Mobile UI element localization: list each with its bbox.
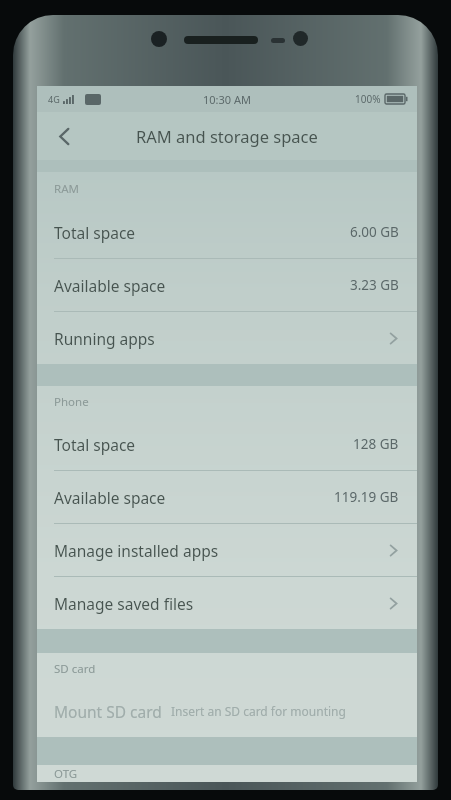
staticText: RAM bbox=[54, 181, 79, 197]
staticText: Manage installed apps bbox=[54, 540, 219, 561]
staticText: Phone bbox=[54, 394, 89, 410]
button[interactable]: Manage saved files bbox=[37, 577, 417, 629]
button[interactable]: Total space bbox=[37, 206, 417, 258]
staticText: Total space bbox=[54, 222, 136, 243]
staticText: 4G bbox=[48, 93, 60, 105]
button[interactable]: Available space bbox=[37, 259, 417, 311]
staticText: Available space bbox=[54, 275, 166, 296]
staticText: 128 GB bbox=[353, 435, 399, 453]
staticText: Mount SD card bbox=[54, 701, 162, 722]
staticText: 119.19 GB bbox=[334, 488, 399, 506]
button[interactable]: Mount SD card bbox=[37, 685, 417, 737]
staticText: 10:30 AM bbox=[203, 92, 251, 107]
button[interactable]: Running apps bbox=[37, 312, 417, 364]
staticText: 6.00 GB bbox=[350, 223, 399, 241]
button[interactable]: Back bbox=[37, 112, 91, 160]
staticText: Insert an SD card for mounting bbox=[171, 703, 346, 719]
button[interactable]: Total space bbox=[37, 418, 417, 470]
staticText: 100% bbox=[355, 92, 381, 106]
staticText: SD card bbox=[54, 661, 96, 677]
button[interactable]: Available space bbox=[37, 471, 417, 523]
button[interactable]: Manage installed apps bbox=[37, 524, 417, 576]
staticText: RAM and storage space bbox=[136, 125, 318, 147]
staticText: Available space bbox=[54, 487, 166, 508]
staticText: Manage saved files bbox=[54, 593, 194, 614]
staticText: Running apps bbox=[54, 328, 155, 349]
staticText: OTG bbox=[54, 766, 78, 782]
staticText: 3.23 GB bbox=[350, 276, 399, 294]
staticText: Total space bbox=[54, 434, 136, 455]
